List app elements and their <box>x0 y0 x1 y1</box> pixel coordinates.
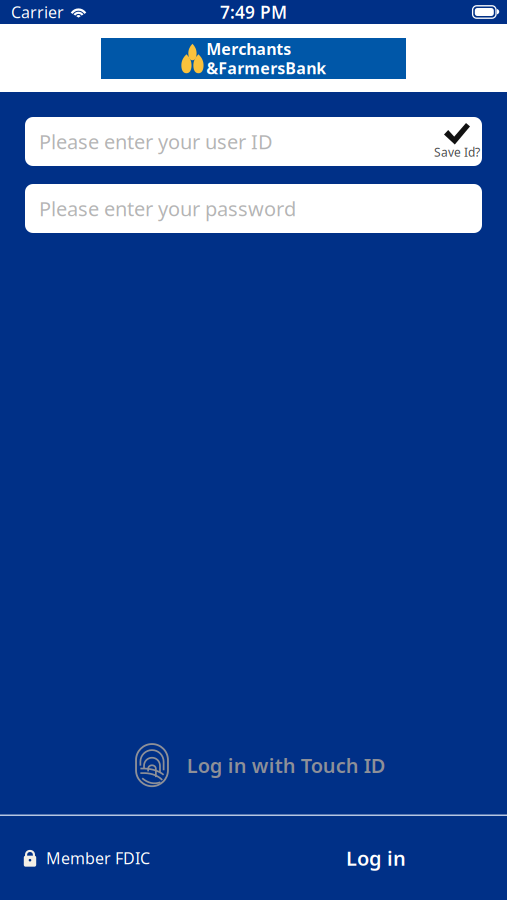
staticText: Please enter your user ID <box>39 128 273 155</box>
staticText: Carrier <box>11 1 64 23</box>
staticText: Save Id? <box>434 144 480 160</box>
staticText: Merchants <box>206 38 291 59</box>
staticText: Member FDIC <box>46 847 150 869</box>
button[interactable]: Save Id? <box>428 119 478 164</box>
button[interactable]: Log in with Touch ID <box>123 736 396 794</box>
staticText: &FarmersBank <box>206 57 326 79</box>
button[interactable]: Log in <box>324 831 428 885</box>
staticText: Log in <box>346 845 406 871</box>
staticText: Log in with Touch ID <box>187 752 386 778</box>
staticText: Please enter your password <box>39 195 296 222</box>
staticText: 7:49 PM <box>220 0 287 23</box>
